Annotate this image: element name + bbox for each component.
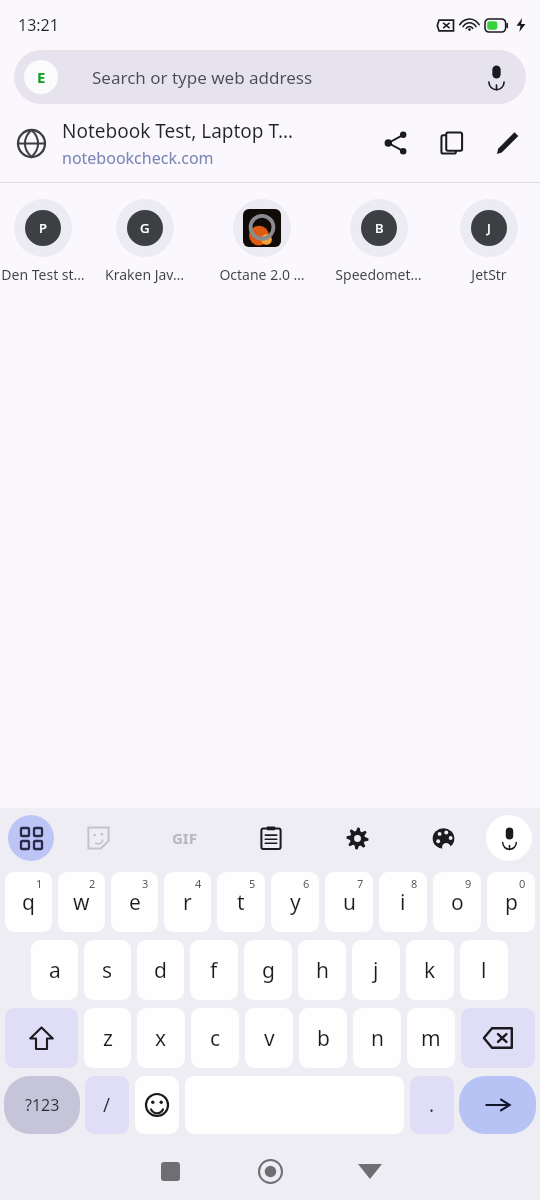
staticText: n: [371, 1024, 384, 1053]
button[interactable]: Settings: [314, 808, 400, 868]
staticText: 13:21: [18, 14, 59, 36]
staticText: 8: [411, 876, 418, 891]
button[interactable]: Recent apps: [120, 1142, 220, 1200]
button[interactable]: k: [406, 940, 454, 1000]
button[interactable]: b: [299, 1008, 347, 1068]
button[interactable]: .: [410, 1076, 454, 1134]
button[interactable]: Copy: [424, 115, 480, 171]
staticText: k: [424, 956, 436, 985]
button[interactable]: Edit: [480, 115, 536, 171]
button[interactable]: Share: [368, 115, 424, 171]
button[interactable]: z: [84, 1008, 131, 1068]
staticText: 6: [303, 876, 310, 891]
button[interactable]: P: [0, 183, 86, 293]
staticText: d: [154, 956, 167, 985]
staticText: notebookcheck.com: [62, 147, 214, 169]
button[interactable]: w: [58, 872, 105, 932]
staticText: Octane 2.0 …: [219, 265, 305, 284]
staticText: b: [317, 1024, 330, 1053]
staticText: B: [375, 219, 384, 237]
button[interactable]: Notebook Test, Laptop T…: [0, 104, 540, 182]
staticText: y: [290, 888, 301, 917]
staticText: 0: [519, 876, 526, 891]
staticText: ?123: [25, 1094, 60, 1116]
button[interactable]: Octane 2.0 …: [203, 183, 320, 293]
staticText: Den Test st…: [1, 265, 85, 284]
button[interactable]: p: [487, 872, 535, 932]
button[interactable]: q: [5, 872, 52, 932]
button[interactable]: Voice search: [474, 55, 518, 99]
staticText: j: [373, 956, 379, 985]
staticText: Speedomet…: [335, 265, 422, 284]
button[interactable]: g: [244, 940, 292, 1000]
staticText: 2: [89, 876, 96, 891]
button[interactable]: i: [379, 872, 427, 932]
button[interactable]: Emoji: [135, 1076, 179, 1134]
button[interactable]: c: [191, 1008, 239, 1068]
staticText: E: [37, 67, 46, 87]
staticText: x: [155, 1024, 167, 1053]
button[interactable]: /: [85, 1076, 129, 1134]
button[interactable]: Toolbox: [8, 815, 54, 861]
staticText: e: [129, 888, 141, 917]
button[interactable]: GIF: [141, 808, 228, 868]
button[interactable]: m: [407, 1008, 455, 1068]
staticText: t: [237, 888, 245, 917]
staticText: 7: [357, 876, 364, 891]
staticText: r: [183, 888, 192, 917]
staticText: Search or type web address: [92, 66, 313, 89]
staticText: c: [210, 1024, 221, 1053]
button[interactable]: e: [111, 872, 158, 932]
staticText: v: [264, 1024, 275, 1053]
button[interactable]: ?123: [4, 1076, 80, 1134]
staticText: s: [102, 956, 113, 985]
button[interactable]: Themes: [400, 808, 486, 868]
staticText: g: [262, 956, 275, 985]
staticText: P: [39, 219, 47, 237]
button[interactable]: r: [164, 872, 211, 932]
button[interactable]: Backspace: [461, 1008, 535, 1068]
staticText: 5: [249, 876, 256, 891]
staticText: J: [487, 219, 491, 237]
staticText: i: [400, 888, 406, 917]
staticText: JetStr: [471, 265, 507, 284]
button[interactable]: o: [433, 872, 481, 932]
staticText: m: [421, 1024, 441, 1053]
staticText: w: [73, 888, 90, 917]
button[interactable]: Voice input: [486, 815, 532, 861]
button[interactable]: Enter: [459, 1076, 536, 1134]
button[interactable]: l: [460, 940, 508, 1000]
staticText: z: [103, 1024, 113, 1053]
button[interactable]: Clipboard: [228, 808, 314, 868]
button[interactable]: n: [353, 1008, 401, 1068]
staticText: p: [505, 888, 518, 917]
button[interactable]: f: [190, 940, 238, 1000]
button[interactable]: u: [325, 872, 373, 932]
staticText: l: [481, 956, 487, 985]
staticText: q: [22, 888, 35, 917]
staticText: o: [451, 888, 464, 917]
button[interactable]: B: [320, 183, 437, 293]
button[interactable]: j: [352, 940, 400, 1000]
button[interactable]: h: [298, 940, 346, 1000]
staticText: .: [429, 1092, 435, 1118]
button[interactable]: Shift: [5, 1008, 78, 1068]
button[interactable]: y: [271, 872, 319, 932]
button[interactable]: Home: [220, 1142, 320, 1200]
button[interactable]: x: [137, 1008, 185, 1068]
button[interactable]: v: [245, 1008, 293, 1068]
button[interactable]: Back: [320, 1142, 420, 1200]
button[interactable]: E: [14, 50, 526, 104]
staticText: u: [343, 888, 356, 917]
staticText: 9: [465, 876, 472, 891]
button[interactable]: d: [137, 940, 184, 1000]
button[interactable]: Stickers: [54, 808, 141, 868]
staticText: a: [49, 956, 61, 985]
button[interactable]: a: [31, 940, 78, 1000]
button[interactable]: G: [86, 183, 203, 293]
button[interactable]: s: [84, 940, 131, 1000]
button[interactable]: J: [437, 183, 540, 293]
button[interactable]: t: [217, 872, 265, 932]
staticText: h: [316, 956, 329, 985]
